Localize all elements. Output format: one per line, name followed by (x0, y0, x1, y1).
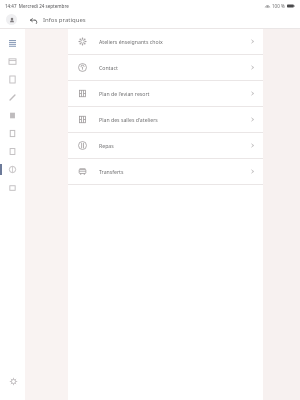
button[interactable]: Repas (68, 133, 263, 159)
button[interactable]: Transferts (68, 159, 263, 185)
button[interactable]: Menu 6 (0, 124, 25, 142)
staticText: Plan de l'evian resort (99, 90, 150, 97)
button[interactable]: Plan des salles d'ateliers (68, 107, 263, 133)
button[interactable]: Ateliers énseignants choix (68, 29, 263, 55)
staticText: Repas (99, 142, 114, 149)
button[interactable]: Profil (6, 14, 17, 25)
staticText: Infos pratiques (43, 16, 86, 24)
button[interactable]: Retour (27, 14, 39, 26)
staticText: Contact (99, 64, 118, 71)
button[interactable]: Contact (68, 55, 263, 81)
staticText: Ateliers énseignants choix (99, 38, 163, 45)
button[interactable]: Menu 4 (0, 88, 25, 106)
staticText: Plan des salles d'ateliers (99, 116, 158, 123)
button[interactable]: Paramètres (6, 374, 20, 388)
button[interactable]: Menu 7 (0, 142, 25, 160)
button[interactable]: Menu 9 (0, 178, 25, 196)
staticText: Transferts (99, 168, 124, 175)
button[interactable]: Plan de l'evian resort (68, 81, 263, 107)
button[interactable]: Menu 5 (0, 106, 25, 124)
button[interactable]: Menu 3 (0, 70, 25, 88)
staticText: 100 % (272, 3, 285, 9)
staticText: 14:47 Mercredi 24 septembre (5, 3, 69, 9)
button[interactable]: Menu 1 (0, 34, 25, 52)
button[interactable]: Menu 8 (0, 160, 25, 178)
button[interactable]: Menu 2 (0, 52, 25, 70)
